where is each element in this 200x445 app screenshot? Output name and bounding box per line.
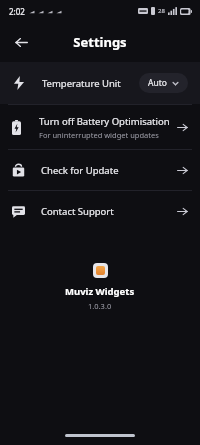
staticText: Temperature Unit [42,77,139,90]
staticText: 2:02 [9,6,25,17]
staticText: For uninterrupted widget updates [39,130,159,140]
button[interactable]: Turn off Battery Optimisation [0,105,200,149]
staticText: Turn off Battery Optimisation [39,115,170,128]
button[interactable]: Auto [139,73,188,93]
staticText: 1.0.3.0 [88,301,112,311]
staticText: 28 [158,7,165,15]
staticText: Contact Support [41,205,177,218]
staticText: Auto [148,77,167,89]
button[interactable]: Back [8,29,34,55]
button[interactable]: Check for Update [0,150,200,190]
staticText: Settings [73,33,127,51]
staticText: Check for Update [41,164,177,177]
button[interactable]: Temperature Unit [0,62,200,104]
button[interactable]: Contact Support [0,191,200,231]
staticText: Muviz Widgets [65,285,135,298]
